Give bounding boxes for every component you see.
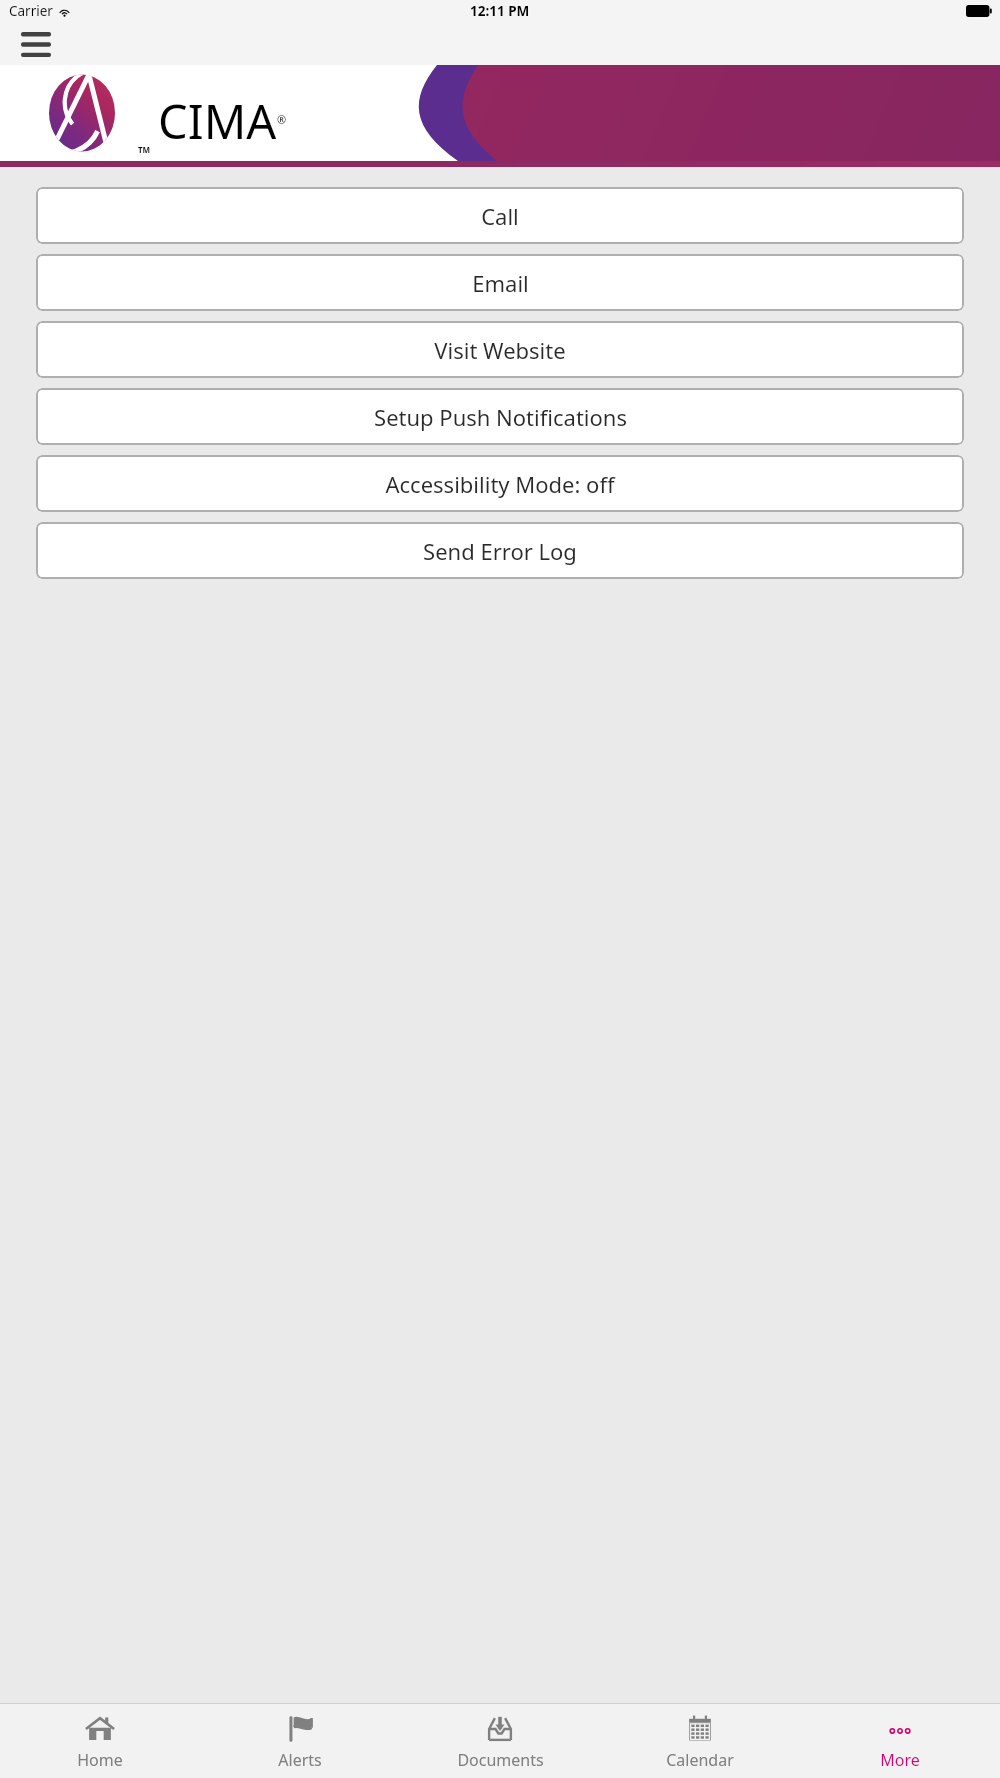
button[interactable]: Menu: [14, 25, 58, 63]
staticText: Visit Website: [434, 335, 566, 365]
staticText: Home: [77, 1749, 123, 1771]
staticText: Email: [472, 268, 529, 298]
staticText: Setup Push Notifications: [374, 402, 627, 432]
staticText: TM: [138, 144, 151, 155]
button[interactable]: Home: [0, 1704, 200, 1778]
staticText: ®: [277, 112, 287, 127]
staticText: Carrier: [9, 2, 53, 20]
button[interactable]: Accessibility Mode: off: [36, 455, 964, 512]
staticText: Accessibility Mode: off: [385, 469, 615, 499]
staticText: Calendar: [666, 1749, 734, 1771]
button[interactable]: Email: [36, 254, 964, 311]
button[interactable]: Send Error Log: [36, 522, 964, 579]
button[interactable]: Calendar: [600, 1704, 800, 1778]
button[interactable]: Documents: [400, 1704, 600, 1778]
button[interactable]: Visit Website: [36, 321, 964, 378]
staticText: CIMA: [158, 89, 277, 153]
button[interactable]: Setup Push Notifications: [36, 388, 964, 445]
button[interactable]: Call: [36, 187, 964, 244]
staticText: More: [880, 1749, 920, 1771]
button[interactable]: More: [800, 1704, 1000, 1778]
staticText: Call: [481, 201, 519, 231]
button[interactable]: Alerts: [200, 1704, 400, 1778]
staticText: 12:11 PM: [470, 2, 530, 20]
staticText: Documents: [457, 1749, 544, 1771]
staticText: Alerts: [278, 1749, 322, 1771]
staticText: Send Error Log: [423, 536, 577, 566]
